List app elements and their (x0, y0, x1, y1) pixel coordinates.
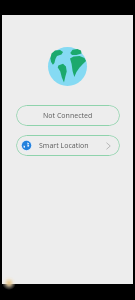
staticText: Not Connected (43, 111, 93, 121)
staticText: Smart Location (39, 141, 89, 151)
other: Open Smart Location (106, 142, 111, 150)
button[interactable]: Smart Location (16, 135, 120, 156)
button[interactable]: Not Connected (16, 105, 120, 126)
